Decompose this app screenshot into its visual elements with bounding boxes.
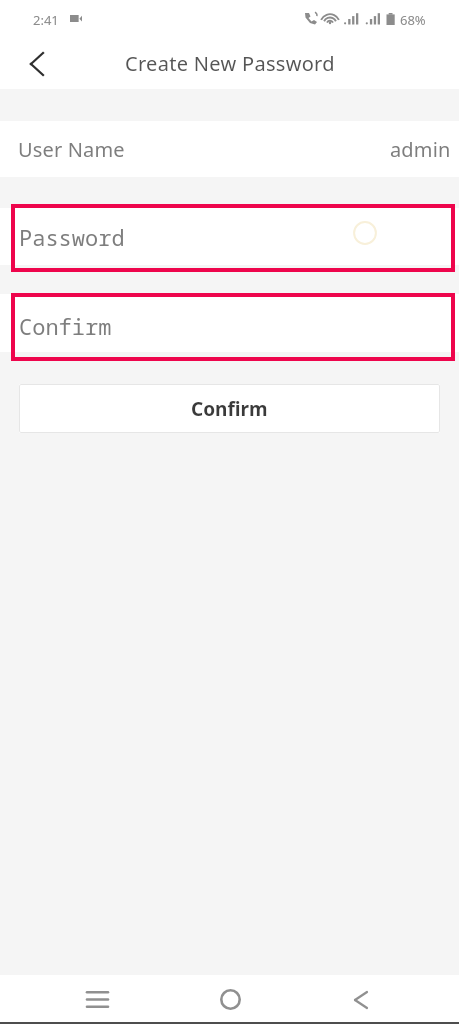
- button[interactable]: Home: [206, 975, 254, 1024]
- staticText: Password: [19, 222, 125, 252]
- button[interactable]: Confirm: [19, 384, 440, 433]
- staticText: Confirm: [191, 396, 268, 422]
- staticText: Confirm: [19, 311, 112, 341]
- button[interactable]: User Name: [0, 121, 459, 177]
- button[interactable]: Recent apps: [73, 975, 121, 1024]
- staticText: User Name: [18, 136, 125, 163]
- staticText: admin: [390, 136, 451, 163]
- staticText: 68%: [400, 11, 426, 29]
- button[interactable]: Back: [13, 37, 61, 90]
- staticText: Create New Password: [125, 50, 335, 77]
- staticText: 2:41: [33, 11, 59, 29]
- button[interactable]: Confirm: [11, 293, 455, 361]
- button[interactable]: Password: [11, 204, 455, 272]
- button[interactable]: Back: [337, 975, 385, 1024]
